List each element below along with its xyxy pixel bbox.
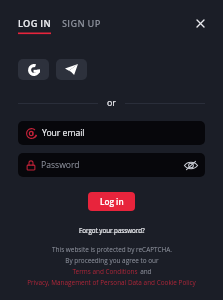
button[interactable]: Close [186,9,215,38]
button[interactable]: SIGN UP [62,0,101,30]
staticText: Log in [100,196,124,207]
staticText: SIGN UP [62,17,101,30]
staticText: Your email [42,127,85,139]
button[interactable]: Continue with Google [18,59,49,80]
staticText: and [138,267,152,276]
staticText: This website is protected by reCAPTCHA. [52,245,172,254]
button[interactable]: Password [18,153,205,177]
button[interactable]: LOG IN [18,0,51,42]
staticText: or [107,97,116,109]
button[interactable]: Continue with Telegram [56,59,87,80]
button[interactable]: Forgot your password? [79,226,145,234]
button[interactable]: Show password [181,155,201,175]
staticText: LOG IN [18,17,51,30]
staticText: Password [41,159,80,171]
button[interactable]: Privacy, Management of Personal Data and… [27,278,196,287]
button[interactable]: Your email [18,121,205,145]
button[interactable]: Log in [88,192,135,211]
button[interactable]: Terms and Conditions [72,267,138,276]
staticText: By proceeding you agree to our [65,256,159,265]
